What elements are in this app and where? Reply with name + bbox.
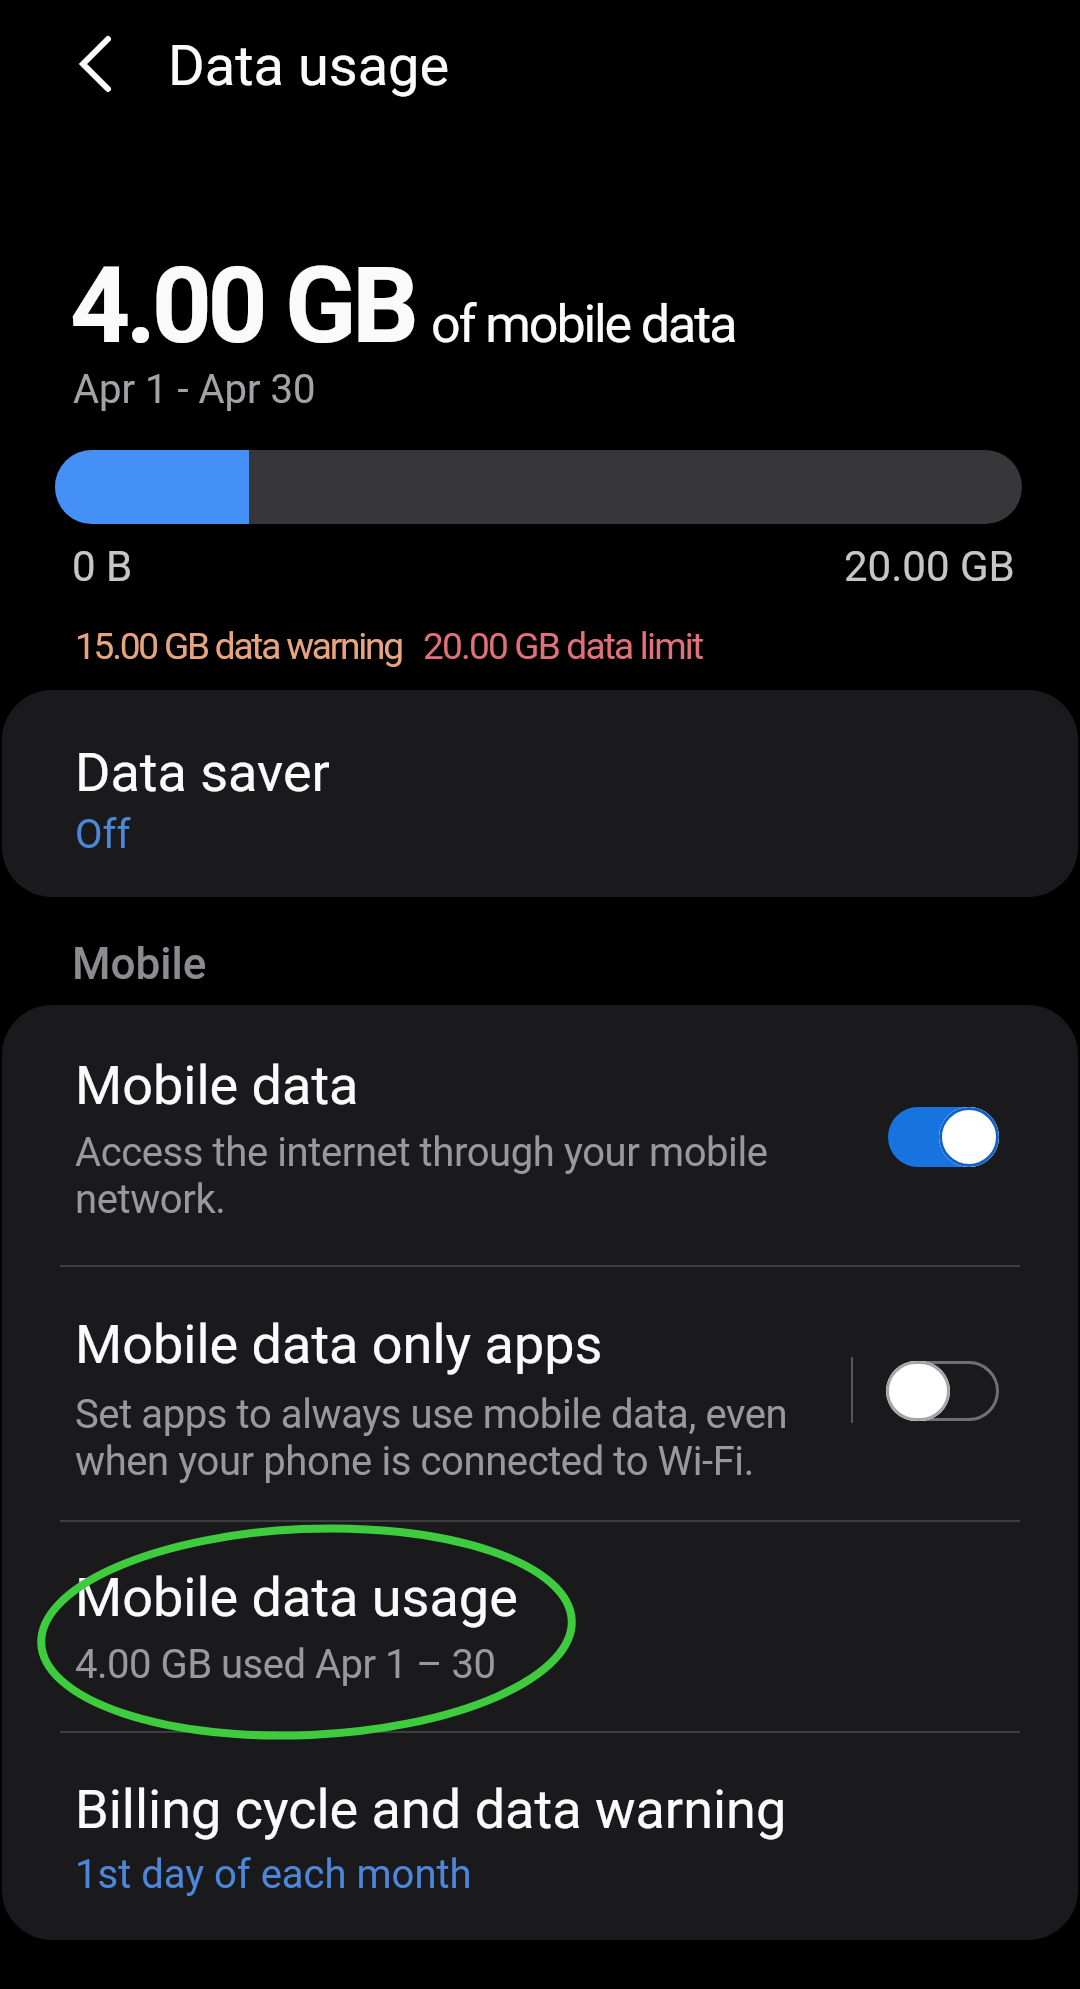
staticText: 4.00 GB used Apr 1 – 30 <box>75 1641 496 1688</box>
staticText: 20.00 GB <box>844 542 1015 591</box>
staticText: Data usage <box>168 33 450 99</box>
button[interactable]: Mobile data only apps <box>2 1267 1078 1520</box>
staticText: 0 B <box>72 542 133 591</box>
button[interactable]: Data saver <box>2 690 1078 897</box>
staticText: Data saver <box>75 741 330 804</box>
staticText: Off <box>75 811 131 858</box>
button[interactable]: Mobile data <box>2 1005 1078 1266</box>
staticText: Access the internet through your mobile … <box>75 1129 768 1223</box>
button[interactable] <box>888 1361 999 1421</box>
staticText: Set apps to always use mobile data, even… <box>75 1391 788 1485</box>
staticText: of mobile data <box>431 294 736 355</box>
button[interactable] <box>888 1107 999 1167</box>
button[interactable]: Billing cycle and data warning <box>2 1733 1078 1940</box>
staticText: Mobile data only apps <box>75 1313 603 1376</box>
staticText: Mobile data <box>75 1054 359 1117</box>
staticText: Billing cycle and data warning <box>75 1778 787 1841</box>
staticText: 4.00 GB <box>70 245 415 368</box>
staticText: Mobile data usage <box>75 1566 518 1629</box>
staticText: Apr 1 - Apr 30 <box>73 366 316 413</box>
button[interactable] <box>60 26 132 102</box>
staticText: 15.00 GB data warning <box>75 625 402 668</box>
staticText: Mobile <box>72 938 207 990</box>
button[interactable]: Mobile data usage <box>2 1522 1078 1731</box>
staticText: 20.00 GB data limit <box>423 625 703 668</box>
staticText: 1st day of each month <box>75 1851 472 1898</box>
